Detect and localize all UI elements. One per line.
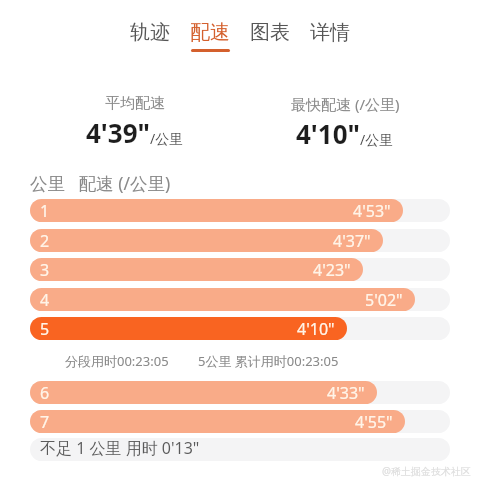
staticText: 不足 1 公里 用时 0'13" — [40, 438, 200, 459]
staticText: 4'33" — [327, 382, 365, 404]
staticText: 分段用时00:23:05 — [65, 352, 169, 370]
button[interactable]: 配速 — [180, 0, 240, 52]
button[interactable]: 详情 — [300, 0, 360, 52]
button[interactable]: 轨迹 — [120, 0, 180, 52]
button[interactable]: 平均配速 — [30, 94, 240, 150]
staticText: 4'53" — [353, 200, 391, 222]
staticText: 图表 — [250, 20, 290, 45]
staticText: 4'23" — [313, 259, 351, 281]
button[interactable]: 5 — [30, 317, 450, 340]
staticText: 最快配速 (/公里) — [291, 94, 400, 114]
staticText: 详情 — [310, 20, 350, 45]
staticText: 1 — [40, 200, 50, 222]
staticText: 4'10" — [296, 116, 360, 151]
staticText: 5公里 累计用时00:23:05 — [198, 352, 339, 370]
staticText: 4'39" — [86, 115, 150, 150]
staticText: 4'55" — [355, 411, 393, 433]
staticText: 4'10" — [297, 318, 335, 340]
staticText: @稀土掘金技术社区 — [382, 464, 471, 478]
staticText: /公里 — [360, 130, 394, 149]
staticText: 4'37" — [333, 230, 371, 252]
button[interactable]: 4 — [30, 288, 450, 311]
staticText: 公里 配速 (/公里) — [30, 171, 171, 195]
button[interactable]: 2 — [30, 229, 450, 252]
staticText: 5 — [40, 318, 50, 340]
staticText: 3 — [40, 259, 50, 281]
staticText: 平均配速 — [105, 94, 165, 113]
button[interactable]: 3 — [30, 258, 450, 281]
button[interactable]: 7 — [30, 410, 450, 433]
staticText: 4 — [40, 289, 50, 311]
staticText: 轨迹 — [130, 20, 170, 45]
staticText: 5'02" — [365, 289, 403, 311]
button[interactable]: 1 — [30, 199, 450, 222]
button[interactable]: 最快配速 (/公里) — [240, 94, 450, 151]
button[interactable]: 6 — [30, 381, 450, 404]
staticText: 7 — [40, 411, 50, 433]
button[interactable]: 不足 1 公里 用时 0'13" — [30, 438, 450, 461]
button[interactable]: 图表 — [240, 0, 300, 52]
staticText: 6 — [40, 382, 50, 404]
staticText: /公里 — [150, 129, 184, 148]
staticText: 2 — [40, 230, 50, 252]
staticText: 配速 — [190, 20, 230, 45]
